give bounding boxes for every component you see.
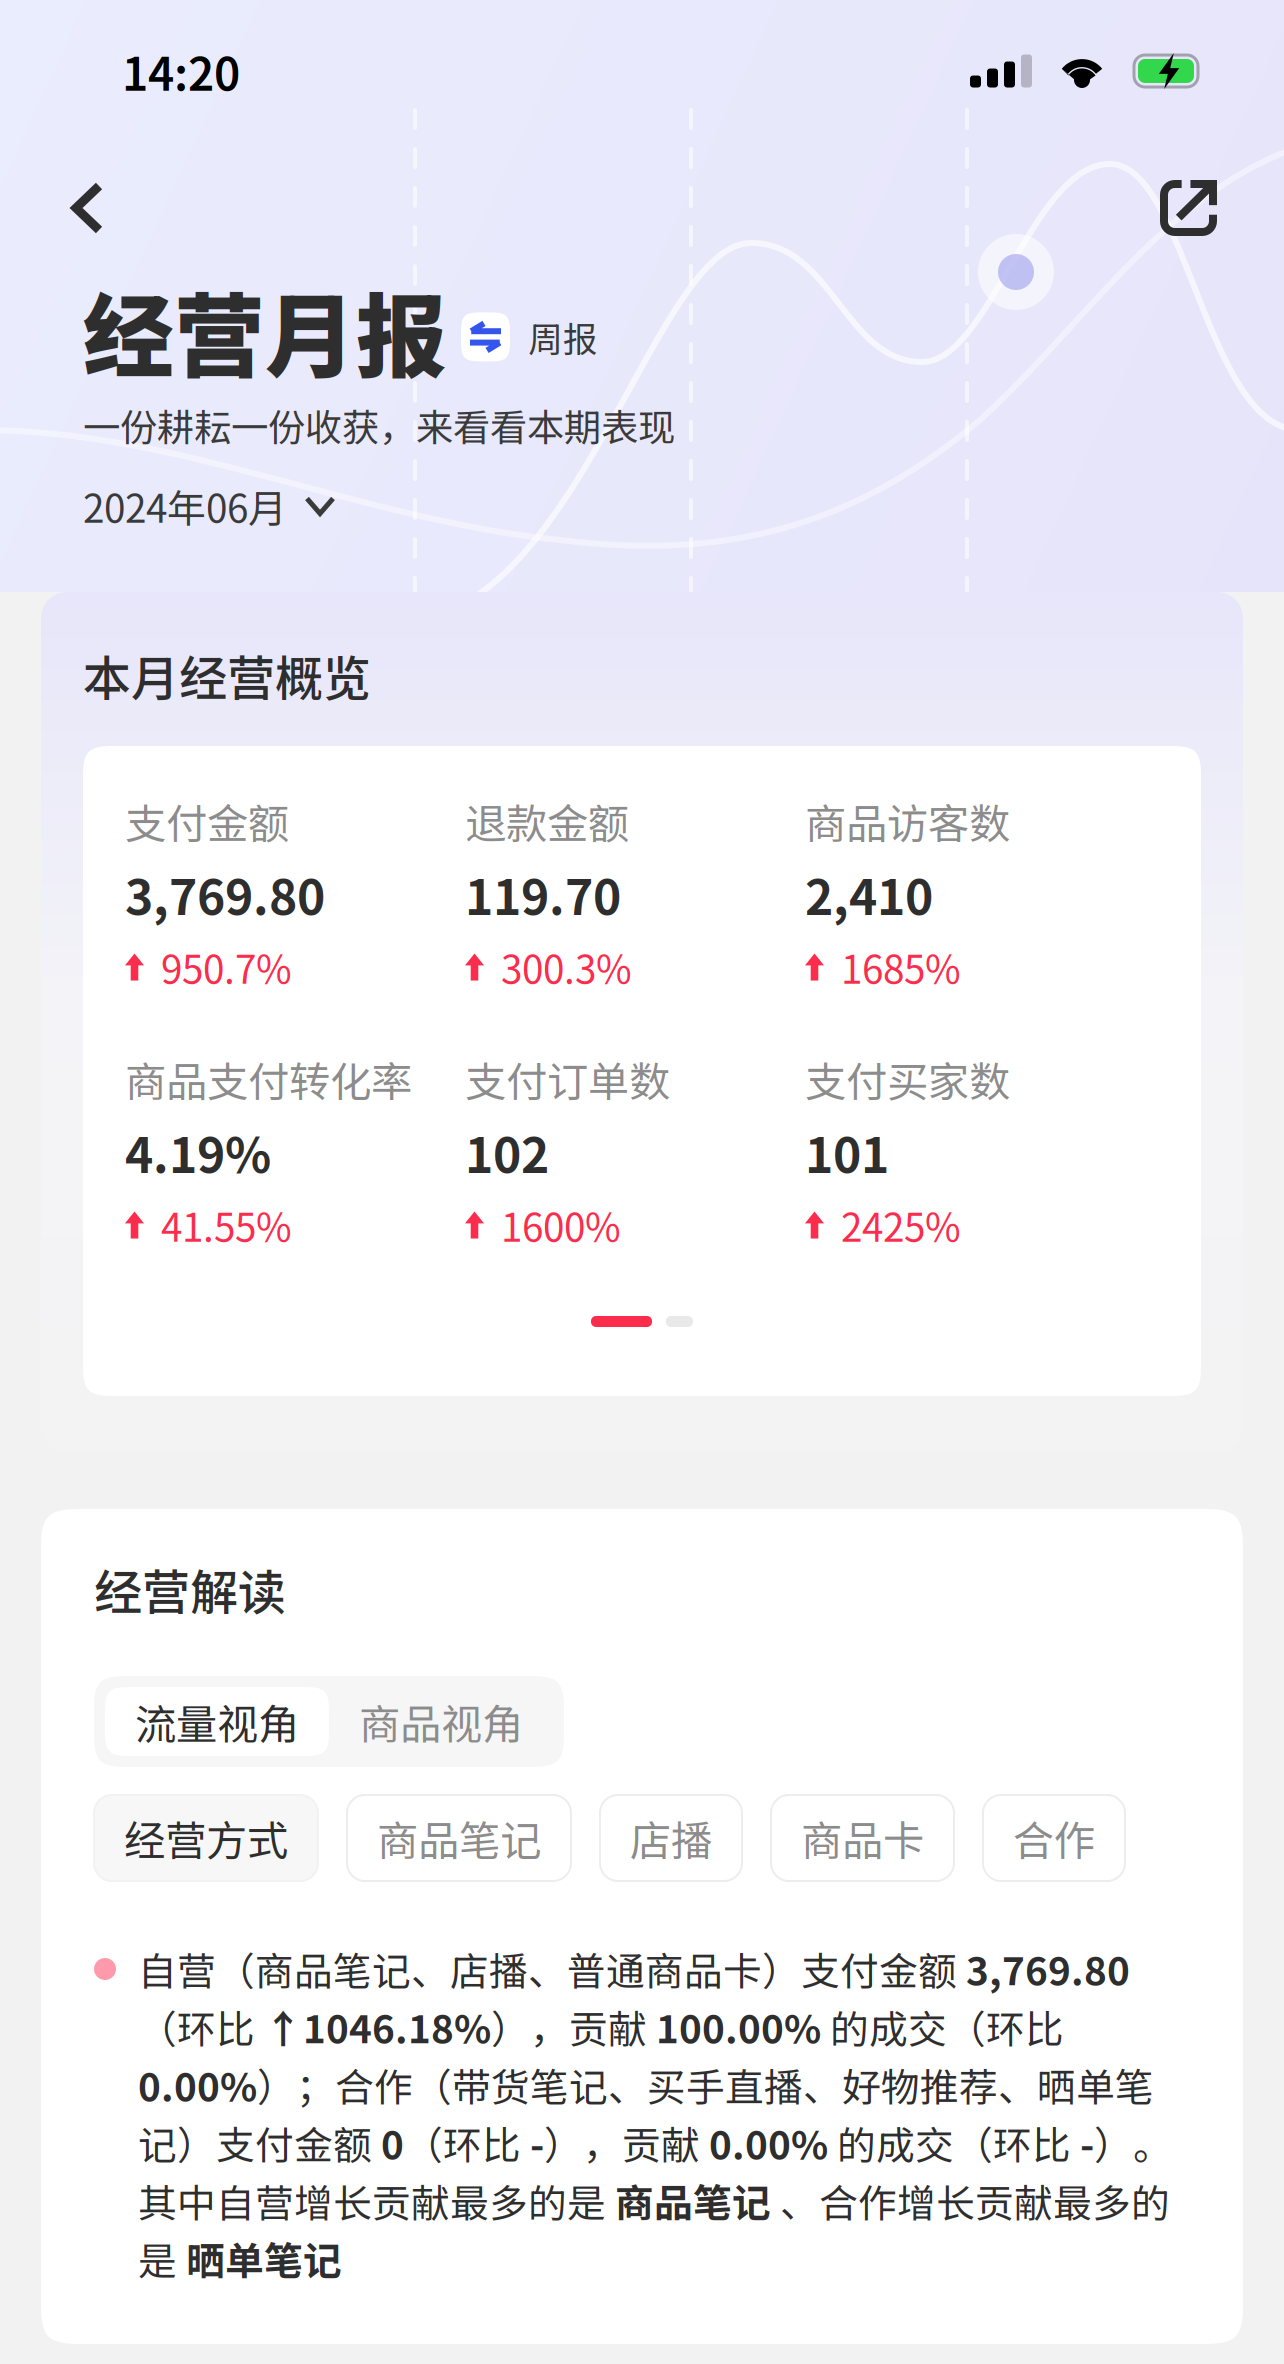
staticText: 经营方式 [124,1808,288,1868]
staticText: 商品卡 [801,1808,924,1868]
staticText: 300.3% [501,939,632,995]
staticText: 支付订单数 [465,1049,670,1109]
staticText: 支付金额 [125,791,289,851]
staticText: 经营月报 [83,264,447,396]
staticText: 41.55% [161,1197,292,1253]
staticText: 流量视角 [135,1692,299,1751]
staticText: 店播 [630,1808,712,1868]
staticText: 1600% [501,1197,621,1253]
staticText: 周报 [528,312,598,362]
staticText: 1685% [841,939,961,995]
staticText: 4.19% [125,1117,271,1187]
staticText: 14:20 [122,38,240,104]
staticText: 合作 [1013,1808,1095,1868]
staticText: 3,769.80 [125,859,325,929]
staticText: 101 [805,1117,889,1187]
button[interactable]: 商品笔记 [347,1795,571,1881]
button[interactable]: Share [1164,140,1284,264]
staticText: 950.7% [161,939,292,995]
staticText: 2024年06月 [83,478,287,534]
staticText: 商品笔记 [377,1808,541,1868]
staticText: 经营解读 [94,1554,286,1624]
button[interactable]: Back [0,142,149,262]
staticText: 商品支付转化率 [125,1049,412,1109]
button[interactable]: 商品视角 [329,1687,553,1756]
staticText: 商品访客数 [805,791,1010,851]
staticText: 支付买家数 [805,1049,1010,1109]
staticText: 102 [465,1117,549,1187]
staticText: 自营（商品笔记、店播、普通商品卡）支付金额 3,769.80（环比 ↑1046.… [138,1941,1172,2286]
button[interactable]: 商品卡 [771,1795,954,1881]
button[interactable]: 流量视角 [105,1687,329,1756]
staticText: 2425% [841,1197,961,1253]
staticText: 商品视角 [359,1692,523,1751]
staticText: 一份耕耘一份收获，来看看本期表现 [83,398,675,452]
button[interactable]: 合作 [983,1795,1125,1881]
button[interactable]: 经营方式 [94,1795,318,1881]
staticText: 119.70 [465,859,621,929]
button[interactable]: 店播 [600,1795,742,1881]
staticText: 2,410 [805,859,933,929]
staticText: 退款金额 [465,791,629,851]
staticText: 本月经营概览 [83,640,371,710]
